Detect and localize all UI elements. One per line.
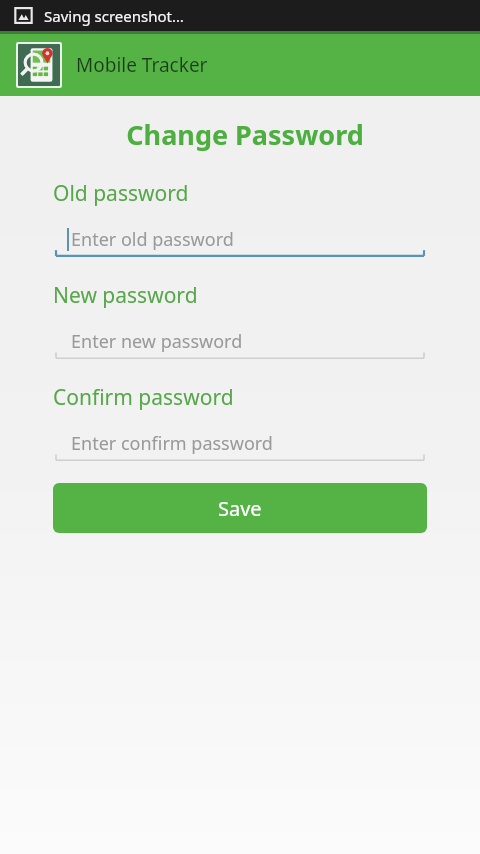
staticText: Enter old password — [71, 227, 234, 252]
staticText: Enter new password — [71, 329, 243, 354]
staticText: Enter confirm password — [71, 431, 273, 456]
staticText: Old password — [53, 179, 189, 208]
staticText: New password — [53, 281, 198, 310]
button[interactable]: Enter new password — [53, 324, 427, 359]
staticText: Save — [218, 495, 262, 522]
button[interactable]: Save — [53, 483, 427, 533]
staticText: Confirm password — [53, 383, 234, 412]
staticText: Change Password — [10, 116, 480, 153]
button[interactable]: Enter confirm password — [53, 426, 427, 461]
button[interactable]: Enter old password — [53, 222, 427, 257]
staticText: Mobile Tracker — [76, 52, 208, 78]
staticText: Saving screenshot… — [44, 6, 184, 26]
